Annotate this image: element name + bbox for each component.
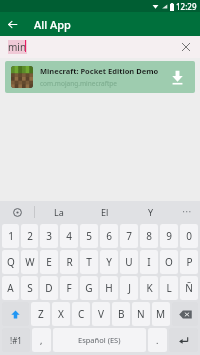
staticText: R bbox=[66, 255, 73, 269]
staticText: 4 bbox=[66, 229, 72, 243]
button[interactable]: 6 bbox=[100, 224, 118, 248]
button[interactable]: La bbox=[35, 201, 82, 223]
button[interactable]: 5 bbox=[80, 224, 98, 248]
staticText: Y bbox=[148, 206, 154, 218]
button[interactable]: C bbox=[72, 302, 90, 326]
button[interactable]: N bbox=[132, 302, 150, 326]
button[interactable]: E bbox=[40, 250, 58, 274]
button[interactable]: F bbox=[60, 276, 78, 300]
button[interactable]: 3 bbox=[40, 224, 58, 248]
button[interactable]: R bbox=[60, 250, 78, 274]
staticText: La bbox=[54, 206, 64, 218]
button[interactable]: Backspace bbox=[172, 302, 198, 326]
staticText: com.mojang.minecraftpe bbox=[40, 79, 117, 88]
staticText: J bbox=[128, 281, 131, 295]
staticText: 6 bbox=[106, 229, 112, 243]
button[interactable]: Back bbox=[0, 12, 24, 36]
button[interactable]: 8 bbox=[140, 224, 158, 248]
staticText: I bbox=[147, 255, 151, 269]
staticText: ⋯ bbox=[182, 206, 192, 218]
button[interactable]: W bbox=[21, 250, 38, 274]
button[interactable]: Minecraft: Pocket Edition Demo bbox=[5, 61, 195, 93]
button[interactable]: Enter bbox=[169, 328, 198, 352]
button[interactable]: Voice input bbox=[0, 201, 34, 223]
staticText: !#1 bbox=[10, 335, 22, 346]
button[interactable]: Shift bbox=[2, 302, 29, 326]
staticText: F bbox=[66, 281, 72, 295]
button[interactable]: D bbox=[40, 276, 58, 300]
button[interactable]: G bbox=[80, 276, 98, 300]
staticText: 2 bbox=[27, 229, 33, 243]
button[interactable]: Download bbox=[165, 65, 189, 89]
staticText: N bbox=[137, 307, 145, 321]
button[interactable]: O bbox=[160, 250, 178, 274]
button[interactable]: Z bbox=[31, 302, 50, 326]
button[interactable]: 0 bbox=[180, 224, 198, 248]
button[interactable]: Y bbox=[100, 250, 118, 274]
button[interactable]: 4 bbox=[60, 224, 78, 248]
staticText: W bbox=[25, 255, 35, 269]
button[interactable]: U bbox=[120, 250, 138, 274]
staticText: V bbox=[98, 307, 104, 321]
staticText: Minecraft: Pocket Edition Demo bbox=[40, 66, 159, 76]
staticText: T bbox=[86, 255, 92, 269]
button[interactable]: !#1 bbox=[2, 328, 30, 352]
staticText: Z bbox=[38, 307, 44, 321]
staticText: O bbox=[165, 255, 173, 269]
button[interactable]: M bbox=[152, 302, 170, 326]
staticText: 5 bbox=[86, 229, 92, 243]
staticText: A bbox=[7, 281, 14, 295]
button[interactable]: V bbox=[92, 302, 110, 326]
button[interactable]: 1 bbox=[2, 224, 19, 248]
button[interactable]: X bbox=[52, 302, 70, 326]
button[interactable]: 2 bbox=[21, 224, 38, 248]
staticText: min bbox=[8, 40, 27, 54]
staticText: S bbox=[27, 281, 33, 295]
staticText: D bbox=[45, 281, 53, 295]
staticText: 9 bbox=[166, 229, 172, 243]
button[interactable]: B bbox=[112, 302, 130, 326]
button[interactable]: , bbox=[32, 328, 51, 352]
button[interactable]: 9 bbox=[160, 224, 178, 248]
staticText: El bbox=[101, 206, 109, 218]
staticText: Español (ES) bbox=[78, 335, 121, 345]
button[interactable]: . bbox=[148, 328, 167, 352]
staticText: H bbox=[105, 281, 113, 295]
staticText: M bbox=[156, 307, 166, 321]
button[interactable]: I bbox=[140, 250, 158, 274]
button[interactable]: Clear bbox=[178, 39, 194, 55]
staticText: U bbox=[125, 255, 133, 269]
staticText: Y bbox=[106, 255, 112, 269]
staticText: G bbox=[85, 281, 93, 295]
staticText: L bbox=[166, 281, 172, 295]
button[interactable]: Y bbox=[128, 201, 174, 223]
button[interactable]: P bbox=[180, 250, 198, 274]
button[interactable]: Q bbox=[2, 250, 19, 274]
button[interactable]: T bbox=[80, 250, 98, 274]
staticText: K bbox=[146, 281, 153, 295]
staticText: All App bbox=[34, 17, 71, 32]
staticText: C bbox=[78, 307, 85, 321]
button[interactable]: J bbox=[120, 276, 138, 300]
button[interactable]: Español (ES) bbox=[53, 328, 146, 352]
staticText: E bbox=[46, 255, 52, 269]
staticText: , bbox=[40, 334, 43, 346]
button[interactable]: More suggestions bbox=[174, 201, 200, 223]
button[interactable]: S bbox=[21, 276, 38, 300]
button[interactable]: 7 bbox=[120, 224, 138, 248]
staticText: 1 bbox=[8, 229, 14, 243]
staticText: 3 bbox=[46, 229, 52, 243]
button[interactable]: Ñ bbox=[180, 276, 198, 300]
button[interactable]: K bbox=[140, 276, 158, 300]
button[interactable]: A bbox=[2, 276, 19, 300]
staticText: X bbox=[58, 307, 64, 321]
staticText: 7 bbox=[126, 229, 132, 243]
staticText: P bbox=[186, 255, 193, 269]
staticText: 8 bbox=[146, 229, 152, 243]
button[interactable]: El bbox=[82, 201, 128, 223]
staticText: 0 bbox=[186, 229, 192, 243]
staticText: Q bbox=[7, 255, 15, 269]
button[interactable]: H bbox=[100, 276, 118, 300]
button[interactable]: L bbox=[160, 276, 178, 300]
staticText: B bbox=[118, 307, 125, 321]
